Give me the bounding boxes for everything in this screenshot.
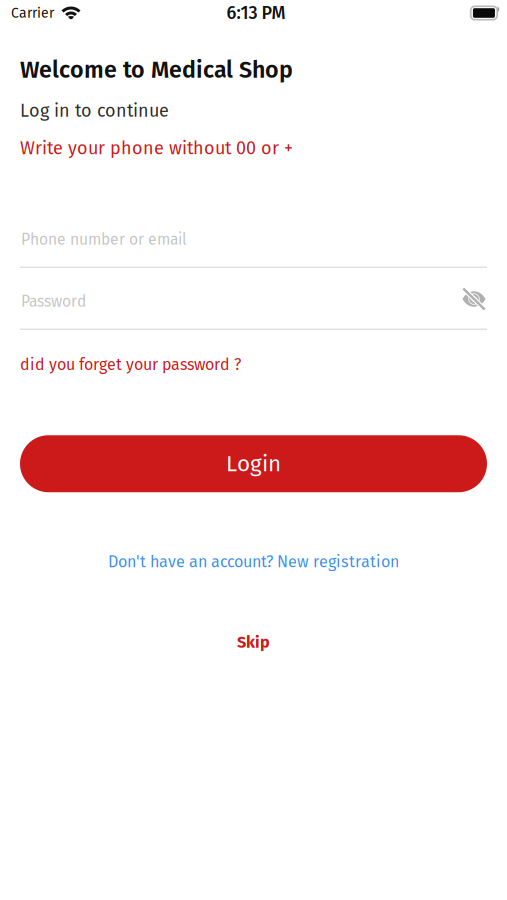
staticText: 6:13 PM <box>226 2 285 24</box>
button[interactable]: Skip <box>0 633 507 652</box>
staticText: Log in to continue <box>20 100 169 121</box>
button[interactable]: Password <box>20 292 460 316</box>
button[interactable]: Phone number or email <box>20 230 487 268</box>
button[interactable]: Don't have an account? New registration <box>0 552 507 572</box>
button[interactable]: Show password <box>460 286 488 312</box>
staticText: Skip <box>237 633 270 652</box>
staticText: Write your phone without 00 or + <box>20 137 293 159</box>
staticText: Phone number or email <box>21 230 187 249</box>
button[interactable]: did you forget your password ? <box>20 355 241 374</box>
button[interactable]: Login <box>20 435 487 492</box>
staticText: Login <box>226 450 281 477</box>
staticText: Carrier <box>11 5 54 21</box>
staticText: Password <box>21 292 86 311</box>
staticText: did you forget your password ? <box>20 355 241 374</box>
staticText: Don't have an account? New registration <box>108 552 399 572</box>
staticText: Welcome to Medical Shop <box>20 56 293 84</box>
